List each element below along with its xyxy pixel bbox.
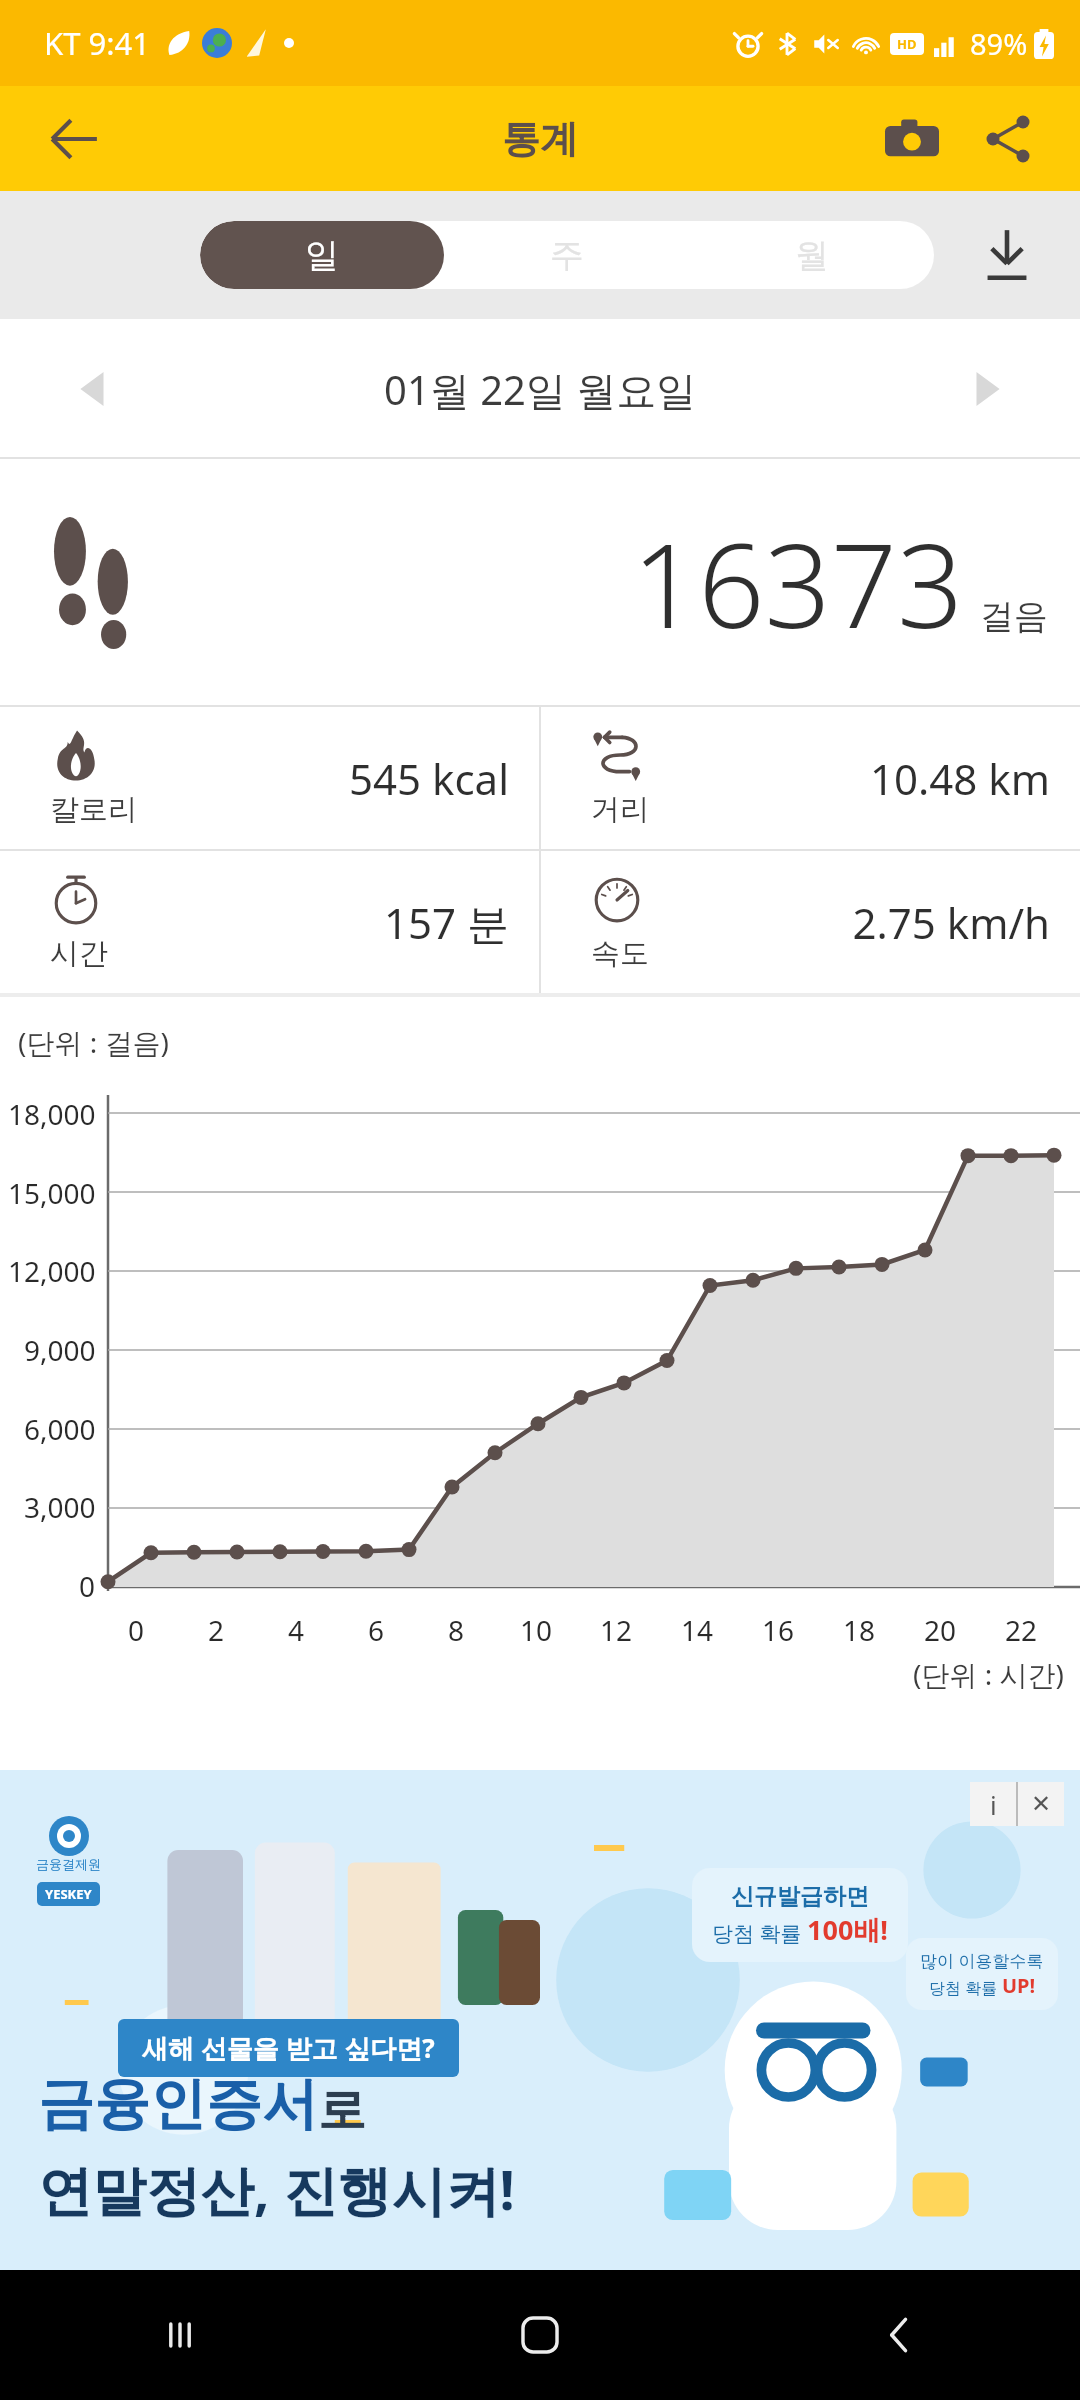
staticText: 545 kcal <box>130 750 509 807</box>
button[interactable]: 시간 <box>0 851 539 993</box>
button[interactable]: Previous day <box>48 343 140 435</box>
button[interactable]: 월 <box>689 221 934 289</box>
staticText: 금융인증서 <box>38 2069 318 2140</box>
button[interactable]: 칼로리 <box>0 707 539 849</box>
staticText: 12 <box>600 1611 633 1649</box>
staticText: 157 분 <box>130 894 509 951</box>
staticText: 주 <box>550 234 584 277</box>
staticText: 18,000 <box>8 1095 96 1133</box>
staticText: 89% <box>970 24 1028 63</box>
staticText: YESKEY <box>45 1885 92 1903</box>
staticText: ✕ <box>1031 1790 1052 1818</box>
staticText: 월 <box>795 234 829 277</box>
staticText: 금융결제원 <box>36 1856 101 1872</box>
staticText: 8 <box>448 1611 465 1649</box>
button[interactable]: Share <box>962 93 1054 185</box>
button[interactable]: 일 <box>200 221 444 289</box>
staticText: 많이 이용할수록 <box>920 1949 1044 1972</box>
staticText: 로 <box>318 2080 366 2140</box>
staticText: 16 <box>762 1611 795 1649</box>
staticText: 0 <box>79 1567 96 1605</box>
staticText: 거리 <box>591 791 649 828</box>
staticText: 12,000 <box>8 1252 96 1290</box>
staticText: 15,000 <box>8 1174 96 1212</box>
staticText: 연말정산, 진행시켜! <box>38 2152 515 2226</box>
staticText: 10.48 km <box>671 750 1050 807</box>
staticText: 속도 <box>591 935 649 972</box>
staticText: (단위 : 시간) <box>913 1655 1064 1693</box>
button[interactable]: 거리 <box>541 707 1080 849</box>
staticText: 신규발급하면 <box>731 1882 869 1911</box>
staticText: 통계 <box>502 115 578 163</box>
button[interactable]: 금융결제원 <box>0 1770 1080 2270</box>
staticText: 당첨 확률 <box>712 1919 807 1948</box>
staticText: KT 9:41 <box>44 22 150 64</box>
staticText: 18 <box>843 1611 876 1649</box>
staticText: 6,000 <box>24 1410 96 1448</box>
staticText: 0 <box>128 1611 145 1649</box>
staticText: 14 <box>681 1611 714 1649</box>
button[interactable]: 주 <box>444 221 689 289</box>
staticText: UP! <box>1002 1972 1036 1999</box>
button[interactable]: Recent apps <box>0 2270 360 2400</box>
staticText: 칼로리 <box>50 791 137 828</box>
button[interactable]: Close ad <box>1018 1782 1064 1826</box>
button[interactable]: Back <box>720 2270 1080 2400</box>
button[interactable]: Ad info <box>970 1782 1016 1826</box>
staticText: i <box>990 1787 997 1822</box>
button[interactable]: Download <box>934 203 1080 307</box>
staticText: 100배! <box>807 1911 888 1948</box>
staticText: 새해 선물을 받고 싶다면? <box>142 2030 435 2066</box>
button[interactable]: 속도 <box>541 851 1080 993</box>
staticText: HD <box>897 35 917 53</box>
staticText: 당첨 확률 <box>929 1977 1002 1999</box>
staticText: 10 <box>520 1611 553 1649</box>
button[interactable]: Home <box>360 2270 720 2400</box>
staticText: 시간 <box>50 935 108 972</box>
button[interactable]: Camera <box>866 93 958 185</box>
staticText: 16373 <box>632 504 964 662</box>
staticText: 2.75 km/h <box>671 894 1050 951</box>
staticText: 01월 22일 월요일 <box>384 362 697 417</box>
staticText: 2 <box>208 1611 225 1649</box>
staticText: 일 <box>305 234 339 277</box>
button[interactable]: Next day <box>940 343 1032 435</box>
staticText: 9,000 <box>24 1331 96 1369</box>
staticText: 20 <box>924 1611 957 1649</box>
staticText: (단위 : 걸음) <box>18 1023 169 1061</box>
staticText: 6 <box>368 1611 385 1649</box>
staticText: 4 <box>288 1611 305 1649</box>
staticText: 걸음 <box>980 595 1048 638</box>
button[interactable]: Back <box>28 93 120 185</box>
staticText: 3,000 <box>24 1488 96 1526</box>
staticText: 22 <box>1005 1611 1038 1649</box>
